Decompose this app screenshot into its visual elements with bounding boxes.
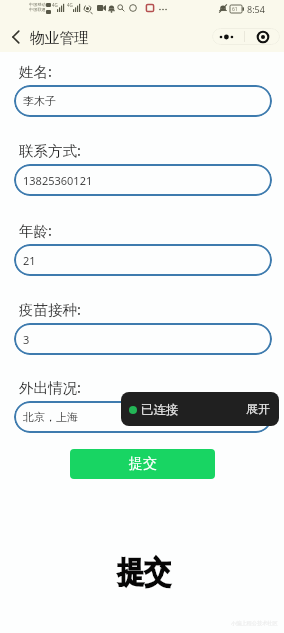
- staticText: 提交: [117, 553, 171, 591]
- staticText: 21: [23, 253, 36, 268]
- staticText: 姓名:: [19, 61, 52, 81]
- button[interactable]: Back: [5, 26, 27, 48]
- staticText: 提交: [129, 455, 157, 473]
- staticText: 61: [232, 6, 238, 13]
- staticText: 联系方式:: [19, 140, 81, 160]
- staticText: 中国联通: [29, 7, 46, 12]
- staticText: 物业管理: [30, 29, 89, 48]
- button[interactable]: 3: [14, 323, 272, 355]
- staticText: 展开: [246, 401, 270, 416]
- button[interactable]: Close mini program: [245, 28, 280, 45]
- staticText: 疫苗接种:: [19, 299, 81, 319]
- staticText: 中国移动: [29, 2, 46, 7]
- button[interactable]: 北京，上海: [14, 401, 272, 433]
- button[interactable]: 13825360121: [14, 164, 272, 196]
- button[interactable]: More options: [212, 28, 244, 45]
- staticText: 北京，上海: [23, 410, 78, 424]
- staticText: 4G: [67, 2, 73, 8]
- button[interactable]: 21: [14, 244, 272, 276]
- button[interactable]: 已连接: [121, 392, 279, 426]
- button[interactable]: 李木子: [14, 85, 272, 117]
- staticText: 外出情况:: [19, 377, 81, 397]
- staticText: 3: [23, 332, 30, 347]
- button[interactable]: 提交: [70, 449, 215, 479]
- staticText: 年龄:: [19, 220, 52, 240]
- staticText: 4G: [52, 2, 58, 8]
- staticText: 已连接: [141, 402, 179, 418]
- staticText: 8:54: [247, 3, 265, 15]
- staticText: 小编上程公技术社区: [231, 620, 278, 627]
- staticText: 李木子: [23, 94, 56, 108]
- staticText: 13825360121: [23, 173, 93, 188]
